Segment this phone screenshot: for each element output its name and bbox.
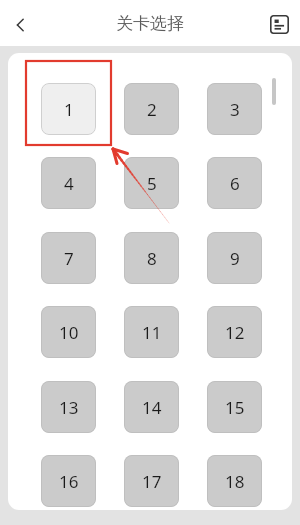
staticText: 3 [230,98,240,121]
button[interactable]: 13 [41,381,96,433]
button[interactable]: 4 [41,157,96,209]
button[interactable]: 12 [207,306,262,358]
staticText: 18 [225,470,245,493]
staticText: 12 [225,321,245,344]
staticText: 8 [147,247,157,270]
button[interactable]: 9 [207,232,262,284]
button[interactable]: 14 [124,381,179,433]
staticText: 16 [59,470,79,493]
staticText: 14 [142,396,162,419]
staticText: 6 [230,172,240,195]
button[interactable]: 18 [207,455,262,507]
button[interactable]: Back [6,10,36,40]
staticText: 4 [64,172,74,195]
button[interactable]: List options [264,9,294,39]
staticText: 5 [147,172,157,195]
button[interactable]: 15 [207,381,262,433]
button[interactable]: 6 [207,157,262,209]
staticText: 11 [142,321,162,344]
staticText: 关卡选择 [0,13,300,34]
staticText: 15 [225,396,245,419]
staticText: 2 [147,98,157,121]
staticText: 9 [230,247,240,270]
button[interactable]: 1 [41,83,96,135]
button[interactable]: 10 [41,306,96,358]
staticText: 10 [59,321,79,344]
button[interactable]: 3 [207,83,262,135]
button[interactable]: 17 [124,455,179,507]
button[interactable]: 2 [124,83,179,135]
button[interactable]: 16 [41,455,96,507]
staticText: 7 [64,247,74,270]
staticText: 13 [59,396,79,419]
button[interactable]: 11 [124,306,179,358]
staticText: 1 [64,98,74,121]
button[interactable]: 7 [41,232,96,284]
staticText: 17 [142,470,162,493]
button[interactable]: 5 [124,157,179,209]
button[interactable]: 8 [124,232,179,284]
